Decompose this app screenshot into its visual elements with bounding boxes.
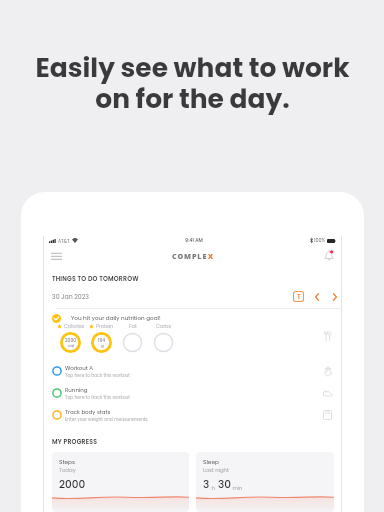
- staticText: Easily see what to work on for the day.: [35, 49, 350, 118]
- staticText: X: [208, 251, 214, 261]
- staticText: 9:41 AM: [185, 237, 203, 244]
- staticText: Sleep: [203, 458, 219, 466]
- staticText: h: [210, 485, 218, 492]
- button[interactable]: Track body stats: [44, 403, 341, 425]
- staticText: 30: [218, 477, 231, 492]
- button[interactable]: Next day: [329, 291, 340, 302]
- staticText: AT&T: [58, 238, 70, 244]
- button[interactable]: Notifications: [321, 248, 336, 263]
- staticText: Fat: [129, 323, 137, 330]
- staticText: Last night: [203, 466, 230, 474]
- staticText: Track body stats: [65, 408, 111, 416]
- staticText: Carbs: [156, 323, 172, 330]
- button[interactable]: Today: [294, 292, 303, 301]
- staticText: Tap here to track this workout: [65, 372, 130, 378]
- staticText: 2000: [59, 477, 86, 492]
- staticText: T: [297, 292, 301, 301]
- button[interactable]: Workout A: [44, 359, 341, 381]
- staticText: MY PROGRESS: [52, 437, 98, 446]
- staticText: COMPLE: [172, 251, 208, 261]
- staticText: Protein: [96, 323, 114, 330]
- staticText: 2000: [65, 337, 77, 343]
- button[interactable]: Menu: [49, 248, 64, 263]
- staticText: Steps: [59, 458, 76, 466]
- staticText: Enter your weight and measurements: [65, 416, 148, 422]
- staticText: g: [101, 343, 104, 349]
- staticText: 100%: [314, 237, 326, 244]
- staticText: 30 Jan 2023: [52, 292, 89, 301]
- staticText: Today: [59, 466, 76, 474]
- button[interactable]: Steps: [52, 452, 189, 512]
- staticText: 3: [203, 477, 210, 492]
- button[interactable]: Nutrition: [321, 329, 334, 342]
- staticText: THINGS TO DO TOMORROW: [52, 274, 139, 283]
- button[interactable]: Previous day: [311, 291, 322, 302]
- staticText: Calories: [64, 323, 85, 330]
- staticText: Tap here to track this workout: [65, 394, 130, 400]
- staticText: min: [231, 485, 243, 492]
- button[interactable]: You hit your daily nutrition goal!: [44, 309, 341, 359]
- button[interactable]: Running: [44, 381, 341, 403]
- staticText: Workout A: [65, 364, 93, 372]
- staticText: 164: [98, 337, 106, 343]
- button[interactable]: Sleep: [196, 452, 334, 512]
- staticText: Running: [65, 386, 88, 394]
- staticText: You hit your daily nutrition goal!: [71, 314, 161, 322]
- staticText: cal: [68, 343, 75, 349]
